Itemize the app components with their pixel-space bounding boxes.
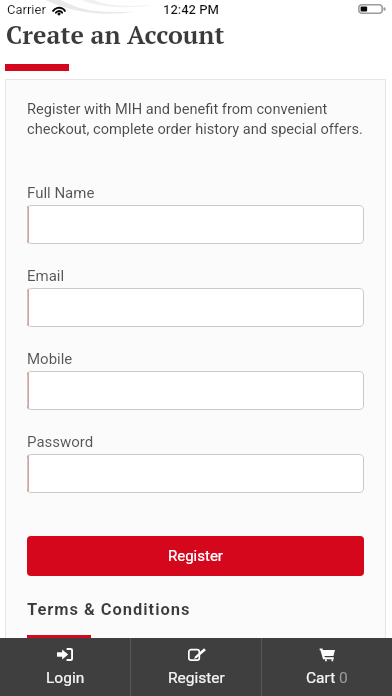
button[interactable]: Register xyxy=(27,536,364,576)
staticText: Register with MIH and benefit from conve… xyxy=(27,100,364,137)
button[interactable]: Register xyxy=(131,638,261,696)
other: Cart xyxy=(319,648,335,661)
staticText: Register xyxy=(168,669,225,687)
staticText: 12:42 PM xyxy=(163,2,219,17)
button[interactable] xyxy=(27,454,364,493)
staticText: Mobile xyxy=(27,350,73,368)
other: Login xyxy=(57,648,73,661)
staticText: Login xyxy=(46,669,85,687)
button[interactable] xyxy=(27,205,364,244)
staticText: Password xyxy=(27,433,94,451)
other: Register xyxy=(188,648,204,661)
button[interactable] xyxy=(27,371,364,410)
staticText: Terms & Conditions xyxy=(27,600,191,619)
button[interactable]: Login xyxy=(0,638,130,696)
staticText: Create an Account xyxy=(6,18,225,51)
button[interactable] xyxy=(27,288,364,327)
staticText: Full Name xyxy=(27,184,95,202)
staticText: Register xyxy=(168,547,223,565)
button[interactable]: Cart, 0 items xyxy=(262,638,392,696)
staticText: Cart 0 xyxy=(306,669,348,687)
staticText: Carrier xyxy=(7,2,46,17)
staticText: Email xyxy=(27,267,65,285)
